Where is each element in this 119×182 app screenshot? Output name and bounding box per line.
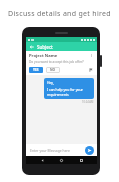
button[interactable]: More options <box>89 53 94 58</box>
button[interactable]: YES <box>29 67 43 73</box>
staticText: I can help you for your requirements <box>47 87 91 97</box>
staticText: Discuss details and get hired <box>8 9 111 19</box>
button[interactable]: Project Name <box>26 51 97 75</box>
staticText: Do you want to accept this job offer? <box>29 60 84 64</box>
button[interactable]: Home <box>58 157 65 164</box>
staticText: NO <box>50 68 56 72</box>
button[interactable]: Hey, <box>44 78 94 99</box>
button[interactable]: NO <box>46 67 60 73</box>
staticText: Subject <box>37 44 53 50</box>
staticText: Project Name <box>29 53 58 59</box>
button[interactable]: Back <box>29 44 35 50</box>
button[interactable]: Send <box>85 146 94 155</box>
staticText: Hey, <box>47 80 54 85</box>
staticText: YES <box>33 68 39 72</box>
button[interactable]: Back <box>39 157 46 164</box>
staticText: 10:24 AM <box>82 100 94 104</box>
button[interactable]: Report <box>88 67 94 73</box>
button[interactable]: Recent apps <box>78 157 85 164</box>
staticText: Enter your Message here <box>30 148 70 153</box>
